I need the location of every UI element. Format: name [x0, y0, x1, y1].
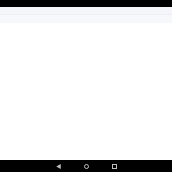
button[interactable]: Back [44, 160, 72, 172]
button[interactable]: Recent apps [100, 160, 128, 172]
button[interactable]: Home [72, 160, 100, 172]
